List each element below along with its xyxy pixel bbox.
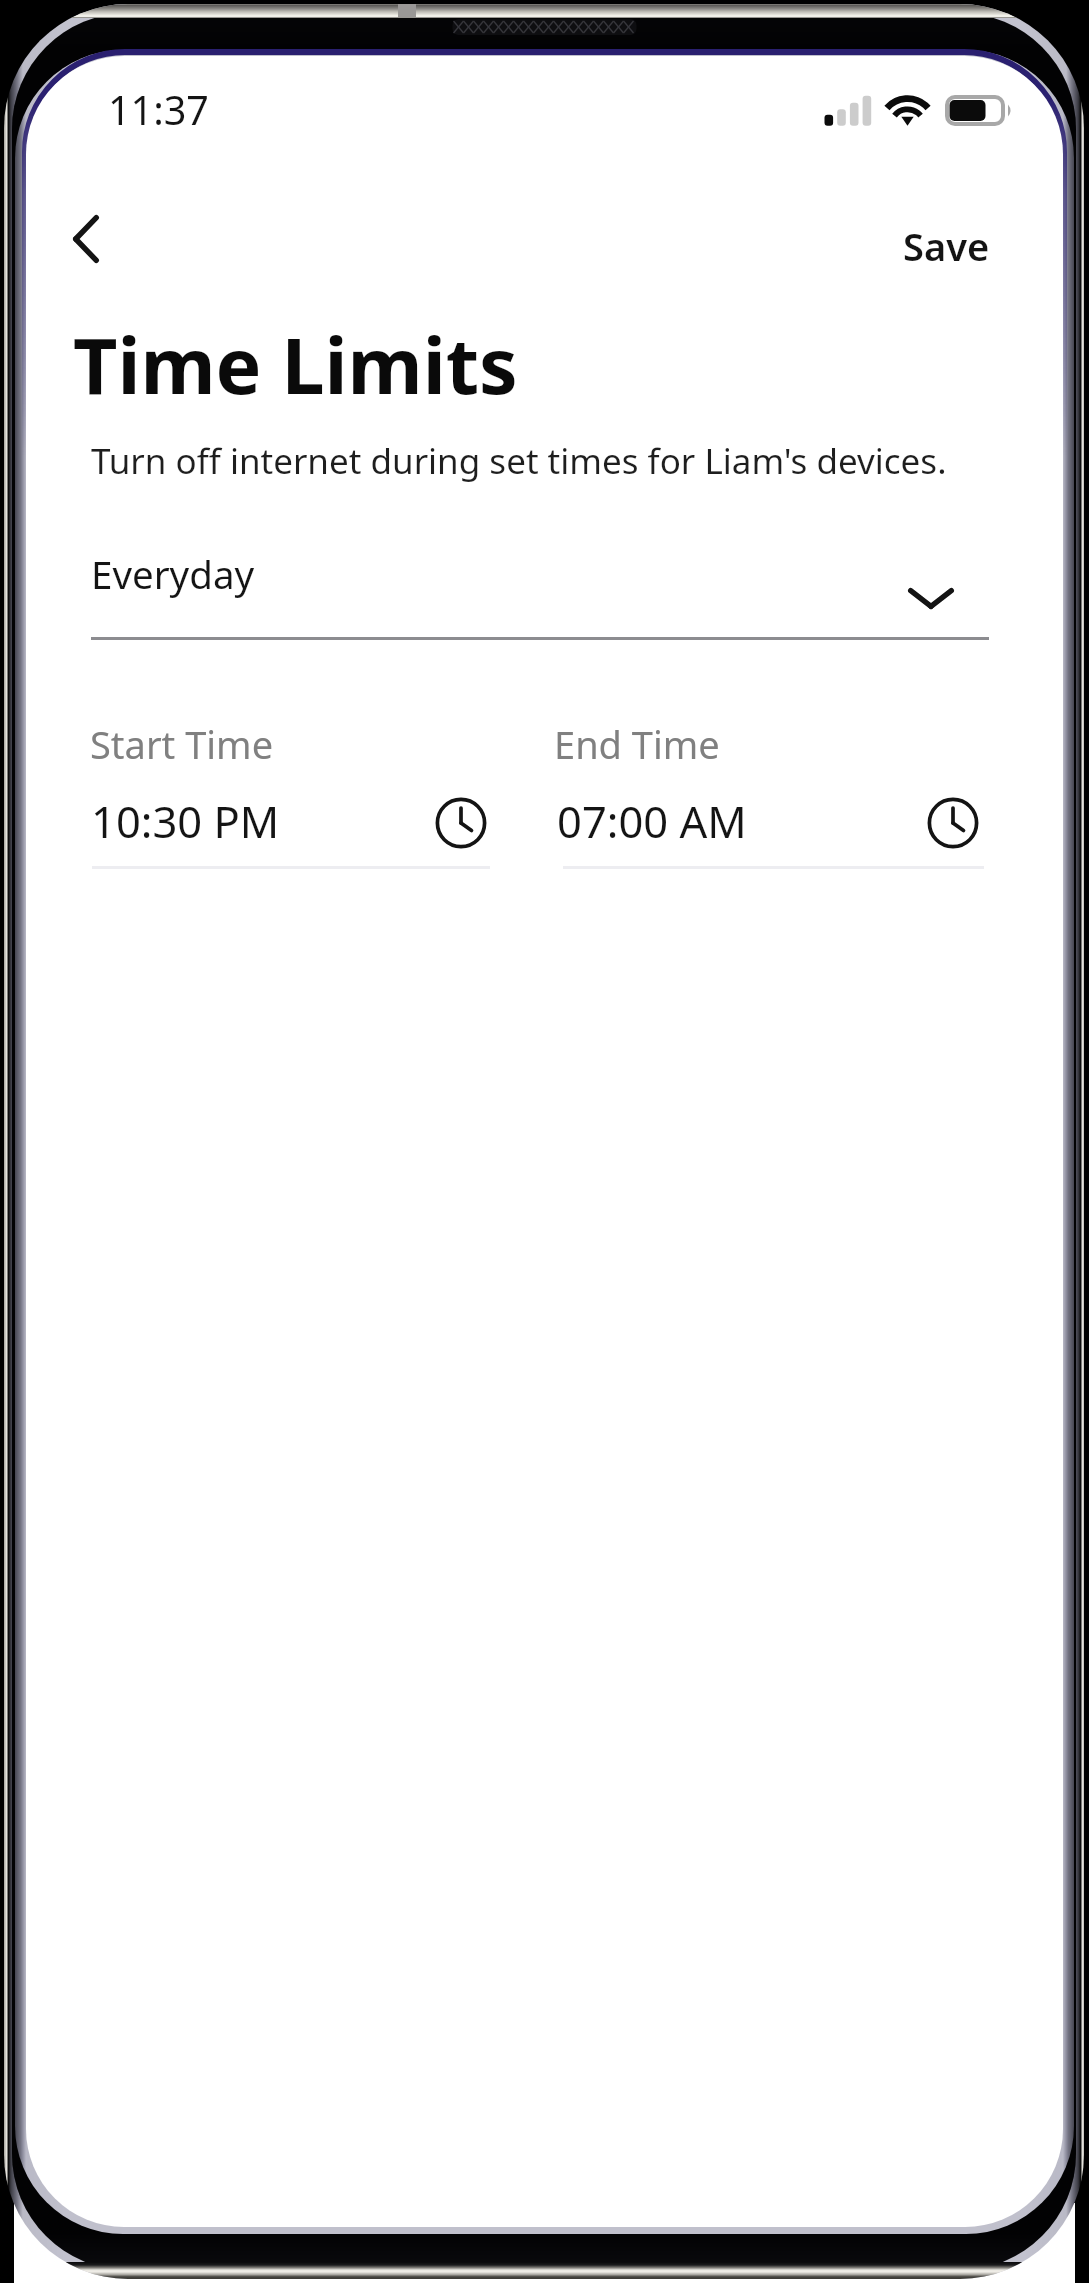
- button[interactable]: [92, 796, 490, 871]
- button[interactable]: Back: [45, 187, 127, 269]
- other: Pick time: [434, 797, 488, 851]
- staticText: Everyday: [91, 548, 255, 600]
- staticText: Save: [903, 220, 990, 272]
- staticText: 07:00 AM: [557, 791, 747, 850]
- staticText: End Time: [554, 718, 720, 770]
- button[interactable]: Save: [881, 206, 1012, 286]
- button[interactable]: Everyday: [91, 534, 989, 638]
- staticText: 11:37: [108, 83, 209, 137]
- staticText: Turn off internet during set times for L…: [91, 437, 947, 485]
- staticText: Time Limits: [73, 312, 518, 417]
- staticText: Start Time: [90, 718, 274, 770]
- button[interactable]: [563, 796, 984, 871]
- staticText: 10:30 PM: [91, 791, 280, 850]
- other: Pick time: [926, 797, 980, 851]
